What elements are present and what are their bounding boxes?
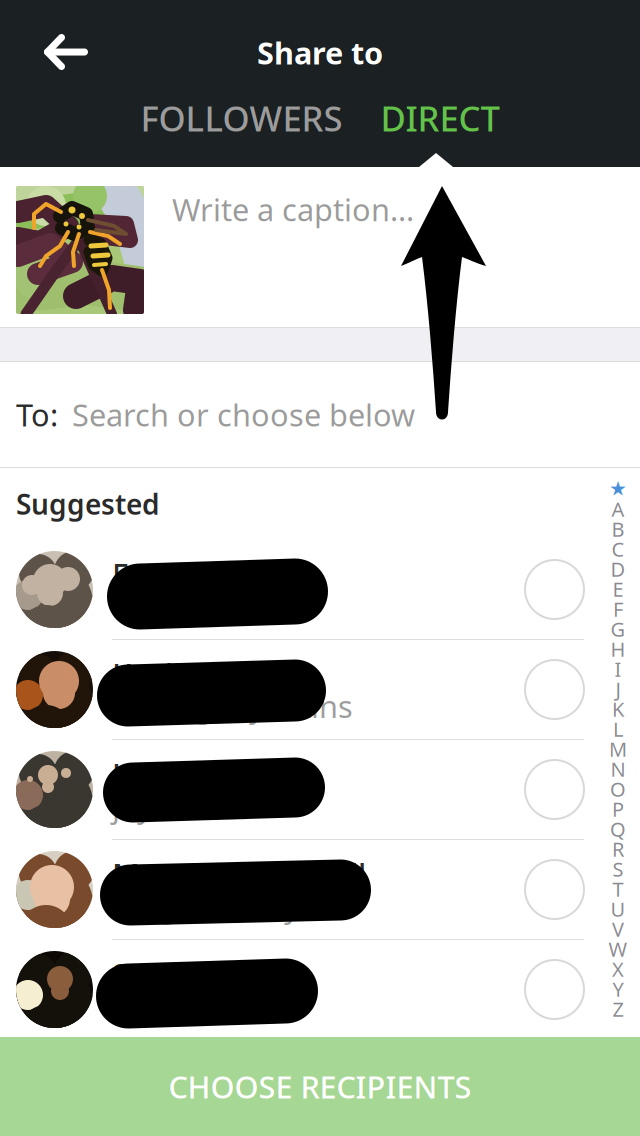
staticText: Search or choose below bbox=[72, 394, 415, 435]
staticText: H bbox=[610, 636, 625, 662]
staticText: P bbox=[612, 796, 624, 822]
staticText: ★ bbox=[609, 477, 627, 500]
button[interactable]: FOLLOWERS bbox=[130, 88, 352, 148]
button[interactable]: Back bbox=[0, 0, 150, 88]
staticText: Q bbox=[610, 816, 626, 842]
staticText: B bbox=[611, 516, 624, 542]
staticText: F bbox=[613, 596, 623, 622]
staticText: To: bbox=[16, 394, 58, 435]
staticText: kayleighhjenkins bbox=[112, 686, 353, 726]
staticText: A bbox=[611, 496, 624, 522]
button[interactable]: Kayleigh J bbox=[0, 640, 640, 740]
staticText: D bbox=[610, 556, 625, 582]
staticText: FOLLOWERS bbox=[140, 95, 342, 141]
staticText: C bbox=[611, 536, 624, 562]
button[interactable]: Alphabet index bbox=[605, 478, 631, 1019]
staticText: Write a caption... bbox=[172, 189, 414, 230]
button[interactable]: CHOOSE RECIPIENTS bbox=[0, 1037, 640, 1136]
staticText: O bbox=[610, 776, 626, 802]
staticText: X bbox=[612, 956, 624, 982]
button[interactable]: Megan Lacey Bell bbox=[0, 840, 640, 940]
staticText: W bbox=[608, 936, 627, 962]
staticText: megan_lacey bbox=[112, 886, 300, 926]
staticText: G bbox=[610, 616, 625, 642]
staticText: Share to bbox=[257, 32, 383, 73]
staticText: Z bbox=[612, 996, 623, 1022]
staticText: U bbox=[610, 896, 625, 922]
button[interactable]: Jay Morris bbox=[0, 740, 640, 840]
staticText: DIRECT bbox=[380, 95, 499, 141]
staticText: R bbox=[612, 836, 624, 862]
staticText: Suggested bbox=[16, 485, 160, 523]
staticText: jaymorris bbox=[112, 786, 250, 826]
button[interactable]: Emily Wright bbox=[0, 540, 640, 640]
staticText: CHOOSE RECIPIENTS bbox=[168, 1066, 471, 1107]
staticText: Sarah Hill bbox=[112, 954, 251, 994]
staticText: Jay Morris bbox=[112, 754, 259, 794]
staticText: Emily Wright bbox=[112, 554, 298, 594]
staticText: L bbox=[613, 716, 623, 742]
staticText: J bbox=[615, 676, 620, 702]
staticText: M bbox=[609, 736, 627, 762]
staticText: Kayleigh J bbox=[112, 654, 254, 694]
staticText: sarahjay bbox=[112, 986, 233, 1026]
button[interactable]: DIRECT bbox=[370, 88, 509, 148]
button[interactable]: Sarah Hill bbox=[0, 940, 640, 1040]
staticText: S bbox=[612, 856, 623, 882]
staticText: emily_w bbox=[112, 586, 228, 626]
staticText: Y bbox=[612, 976, 623, 1002]
staticText: E bbox=[612, 576, 623, 602]
staticText: Megan Lacey Bell bbox=[112, 854, 366, 894]
staticText: V bbox=[612, 916, 624, 942]
staticText: T bbox=[612, 876, 623, 902]
staticText: K bbox=[612, 696, 624, 722]
staticText: I bbox=[614, 656, 621, 682]
staticText: N bbox=[610, 756, 625, 782]
